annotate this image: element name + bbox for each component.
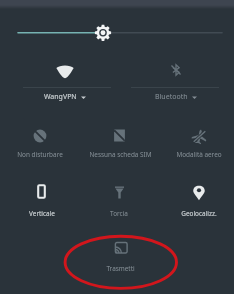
- button[interactable]: [161, 178, 234, 220]
- button[interactable]: [81, 179, 157, 221]
- button[interactable]: [82, 121, 158, 161]
- staticText: Bluetooth: [155, 92, 188, 102]
- button[interactable]: [161, 122, 234, 162]
- button[interactable]: Bluetooth off: [120, 54, 232, 105]
- staticText: Geolocalizz.: [181, 209, 217, 218]
- staticText: Trasmetti: [106, 264, 135, 273]
- button[interactable]: Brightness: [0, 20, 234, 44]
- button[interactable]: [4, 178, 80, 221]
- button[interactable]: [2, 122, 78, 162]
- staticText: Torcia: [110, 209, 128, 218]
- button[interactable]: [82, 234, 158, 276]
- staticText: Verticale: [29, 209, 55, 218]
- staticText: Nessuna scheda SIM: [89, 150, 152, 159]
- button[interactable]: Wi-Fi WangVPN: [9, 55, 121, 105]
- staticText: Non disturbare: [17, 150, 63, 159]
- staticText: Modalità aereo: [176, 150, 222, 159]
- staticText: WangVPN: [44, 92, 77, 102]
